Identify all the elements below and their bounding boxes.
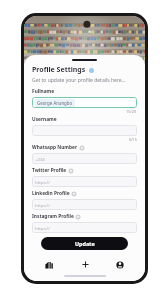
staticText: Fullname [32, 88, 55, 95]
staticText: Instagram Profile [32, 213, 74, 220]
button[interactable]: https:// [32, 199, 137, 210]
button[interactable]: Profile [109, 257, 131, 272]
staticText: 15/20 [126, 109, 137, 114]
staticText: Username [32, 116, 57, 123]
staticText: Twitter Profile [32, 167, 67, 174]
staticText: https:// [35, 179, 50, 185]
staticText: Get to update your profile details here.… [32, 77, 126, 84]
staticText: 0/15 [129, 137, 137, 142]
button[interactable]: https:// [32, 222, 137, 233]
button[interactable]: Add [74, 257, 96, 272]
button[interactable]: https:// [32, 176, 137, 187]
button[interactable]: George Anangbo [32, 97, 137, 108]
button[interactable]: Home [38, 257, 60, 272]
staticText: George Anangbo [37, 100, 73, 106]
staticText: https:// [35, 202, 50, 208]
staticText: +234 [35, 156, 45, 162]
staticText: Linkedin Profile [32, 190, 70, 197]
button[interactable] [32, 125, 137, 136]
staticText: Whatsapp Number [32, 144, 78, 151]
staticText: Profile Settings [32, 65, 86, 75]
staticText: Update [75, 240, 95, 247]
button[interactable]: Update [41, 237, 128, 250]
staticText: https:// [35, 225, 50, 231]
button[interactable]: +234 [32, 153, 137, 164]
